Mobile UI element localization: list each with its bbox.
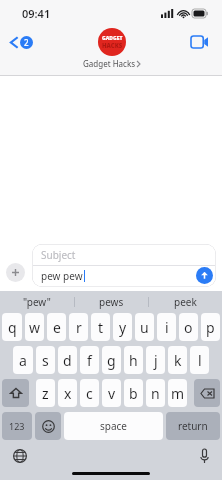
button[interactable]: "pew"	[0, 291, 74, 313]
staticText: 123	[9, 420, 25, 432]
staticText: z	[42, 384, 49, 403]
button[interactable]: n	[146, 379, 165, 407]
staticText: f	[87, 351, 92, 370]
staticText: HACKS	[102, 42, 123, 50]
button[interactable]: Delete	[194, 379, 220, 407]
button[interactable]: j	[146, 346, 165, 374]
staticText: l	[198, 351, 202, 370]
button[interactable]: f	[80, 346, 99, 374]
staticText: d	[63, 351, 72, 370]
button[interactable]: q	[2, 313, 22, 341]
staticText: u	[140, 318, 149, 337]
button[interactable]: h	[124, 346, 143, 374]
button[interactable]: FaceTime video call	[187, 32, 212, 52]
staticText: Gadget Hacks	[83, 58, 135, 69]
staticText: p	[206, 318, 215, 337]
button[interactable]: a	[13, 346, 33, 374]
button[interactable]: Add attachment	[6, 263, 25, 282]
staticText: j	[154, 351, 158, 370]
button[interactable]: z	[36, 379, 55, 407]
button[interactable]: s	[36, 346, 55, 374]
button[interactable]: c	[80, 379, 99, 407]
staticText: peek	[174, 295, 197, 309]
staticText: r	[76, 318, 82, 337]
button[interactable]: d	[58, 346, 77, 374]
staticText: 09:41	[22, 6, 51, 21]
staticText: space	[100, 419, 127, 433]
button[interactable]: i	[157, 313, 176, 341]
staticText: s	[42, 351, 49, 370]
button[interactable]: u	[135, 313, 154, 341]
button[interactable]: x	[58, 379, 77, 407]
staticText: "pew"	[23, 295, 51, 309]
staticText: h	[129, 351, 138, 370]
button[interactable]: return	[166, 412, 220, 440]
button[interactable]: r	[69, 313, 88, 341]
button[interactable]: p	[201, 313, 220, 341]
button[interactable]: Emoji	[35, 412, 61, 440]
button[interactable]: o	[179, 313, 198, 341]
button[interactable]: t	[91, 313, 110, 341]
staticText: n	[151, 384, 160, 403]
button[interactable]: y	[113, 313, 132, 341]
staticText: v	[108, 384, 116, 403]
button[interactable]: pews	[75, 291, 148, 313]
button[interactable]: e	[47, 313, 66, 341]
button[interactable]: Dictate	[197, 446, 212, 466]
staticText: b	[129, 384, 138, 403]
button[interactable]: l	[190, 346, 209, 374]
button[interactable]: peek	[149, 291, 222, 313]
staticText: x	[64, 384, 72, 403]
button[interactable]: GADGET	[77, 28, 146, 69]
staticText: return	[178, 419, 208, 433]
button[interactable]: g	[102, 346, 121, 374]
staticText: q	[8, 318, 17, 337]
button[interactable]: Back, 2 unread	[8, 32, 35, 53]
staticText: o	[184, 318, 193, 337]
staticText: Subject	[41, 248, 76, 262]
staticText: k	[174, 351, 182, 370]
staticText: c	[86, 384, 93, 403]
button[interactable]: k	[168, 346, 187, 374]
staticText: 2	[24, 37, 29, 48]
staticText: t	[98, 318, 104, 337]
button[interactable]: Change keyboard	[10, 446, 30, 466]
button[interactable]: 123	[2, 412, 32, 440]
staticText: GADGET	[102, 35, 123, 42]
staticText: m	[171, 384, 185, 403]
staticText: w	[29, 318, 41, 337]
button[interactable]: m	[168, 379, 187, 407]
staticText: a	[19, 351, 27, 370]
staticText: pews	[99, 295, 124, 309]
button[interactable]: b	[124, 379, 143, 407]
button[interactable]: w	[25, 313, 44, 341]
staticText: g	[107, 351, 116, 370]
button[interactable]: space	[64, 412, 163, 440]
staticText: pew pew	[41, 269, 83, 283]
button[interactable]: v	[102, 379, 121, 407]
button[interactable]: Shift	[2, 379, 29, 407]
staticText: y	[119, 318, 127, 337]
staticText: i	[165, 318, 169, 337]
button[interactable]: Send	[196, 267, 213, 284]
staticText: e	[53, 318, 61, 337]
